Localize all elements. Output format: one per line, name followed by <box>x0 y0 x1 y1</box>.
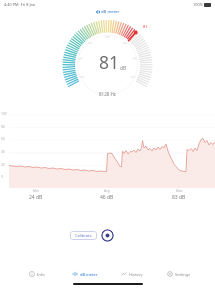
staticText: History <box>129 272 143 277</box>
staticText: 81 <box>99 50 120 74</box>
staticText: dB meter <box>80 272 98 277</box>
staticText: 100% <box>193 2 203 7</box>
staticText: 24 dB <box>29 194 43 201</box>
staticText: 4:40 PM Fri 8 Jan <box>4 2 36 7</box>
staticText: 80 <box>1 125 5 129</box>
staticText: 46 dB <box>100 194 114 201</box>
staticText: Info <box>37 272 45 277</box>
button[interactable]: Info <box>13 266 61 282</box>
button[interactable]: Calibrate <box>70 231 97 240</box>
button[interactable]: Settings <box>155 266 202 282</box>
button[interactable]: dB meter <box>96 9 120 15</box>
staticText: 60 <box>1 137 5 141</box>
button[interactable]: History <box>108 266 155 282</box>
staticText: 100 <box>1 112 7 116</box>
staticText: Settings <box>175 272 191 277</box>
staticText: 83 dB <box>172 194 186 201</box>
staticText: 8128 Hz <box>99 91 116 97</box>
staticText: 20 <box>1 163 5 167</box>
staticText: 40 <box>1 150 5 154</box>
staticText: Avg <box>104 189 110 193</box>
button[interactable]: Record <box>101 229 114 242</box>
staticText: Max <box>176 189 183 193</box>
staticText: Calibrate <box>75 233 92 238</box>
button[interactable]: dB meter <box>61 266 108 282</box>
staticText: 0 <box>1 175 3 179</box>
staticText: 81 <box>143 24 148 29</box>
staticText: dB <box>120 65 127 72</box>
staticText: dB meter <box>101 9 120 15</box>
staticText: Min <box>33 189 39 193</box>
